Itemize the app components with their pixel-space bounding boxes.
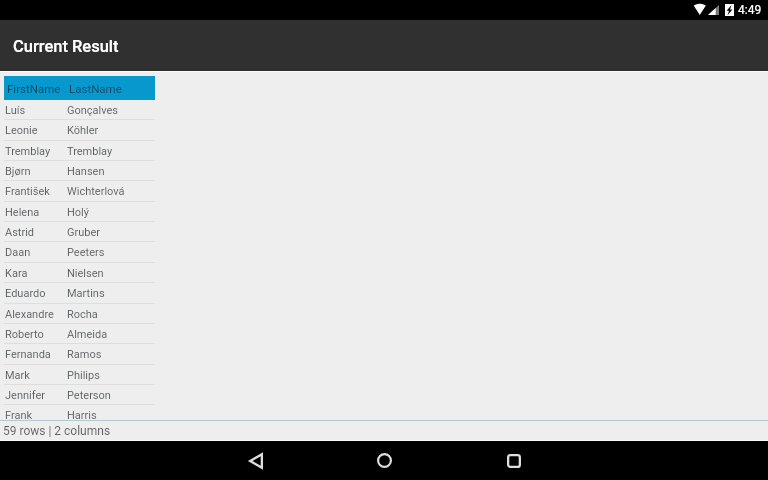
button[interactable]: Leonie — [4, 120, 155, 141]
staticText: Nielsen — [67, 267, 104, 280]
button[interactable]: Bjørn — [4, 161, 155, 181]
button[interactable]: Luís — [4, 100, 155, 120]
button[interactable]: Recent apps — [485, 441, 543, 480]
button[interactable]: Current Result — [0, 20, 768, 71]
staticText: Tremblay — [67, 145, 113, 158]
staticText: Martins — [67, 287, 105, 300]
button[interactable]: František — [4, 181, 155, 202]
staticText: Philips — [67, 369, 100, 382]
staticText: Helena — [5, 206, 67, 219]
button[interactable]: Tremblay — [4, 141, 155, 161]
staticText: Köhler — [67, 124, 99, 137]
button[interactable]: Kara — [4, 263, 155, 283]
staticText: Leonie — [5, 124, 67, 137]
staticText: 4:49 — [738, 3, 762, 17]
staticText: Current Result — [13, 37, 119, 56]
button[interactable]: Frank — [4, 405, 155, 420]
staticText: Holý — [67, 206, 89, 219]
staticText: Harris — [67, 409, 97, 420]
button[interactable]: Roberto — [4, 324, 155, 344]
staticText: Daan — [5, 246, 67, 259]
staticText: Alexandre — [5, 308, 67, 321]
button[interactable]: Daan — [4, 242, 155, 263]
button[interactable]: Home — [355, 441, 413, 480]
staticText: Almeida — [67, 328, 108, 341]
staticText: Gruber — [67, 226, 101, 239]
staticText: Peeters — [67, 246, 105, 259]
button[interactable]: Helena — [4, 202, 155, 222]
button[interactable]: Jennifer — [4, 385, 155, 405]
staticText: FirstName — [7, 82, 69, 95]
staticText: 59 rows | 2 columns — [3, 424, 111, 438]
button[interactable]: Astrid — [4, 222, 155, 242]
staticText: Jennifer — [5, 389, 67, 402]
staticText: Peterson — [67, 389, 111, 402]
button[interactable]: Alexandre — [4, 304, 155, 324]
staticText: Kara — [5, 267, 67, 280]
staticText: Fernanda — [5, 348, 67, 361]
staticText: Bjørn — [5, 165, 67, 178]
button[interactable]: Eduardo — [4, 283, 155, 304]
staticText: LastName — [69, 82, 122, 95]
staticText: Frank — [5, 409, 67, 420]
staticText: Ramos — [67, 348, 102, 361]
button[interactable]: Mark — [4, 365, 155, 385]
staticText: Wichterlová — [67, 185, 125, 198]
button[interactable]: FirstName — [4, 76, 155, 100]
staticText: Hansen — [67, 165, 105, 178]
staticText: Roberto — [5, 328, 67, 341]
staticText: Eduardo — [5, 287, 67, 300]
staticText: Rocha — [67, 308, 98, 321]
staticText: Luís — [5, 104, 67, 117]
staticText: Gonçalves — [67, 104, 119, 117]
button[interactable]: Back — [227, 441, 285, 480]
staticText: František — [5, 185, 67, 198]
button[interactable]: Fernanda — [4, 344, 155, 365]
staticText: Astrid — [5, 226, 67, 239]
staticText: Mark — [5, 369, 67, 382]
staticText: Tremblay — [5, 145, 67, 158]
